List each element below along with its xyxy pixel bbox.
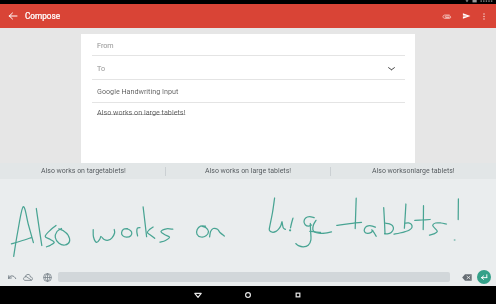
button[interactable]: Home: [242, 289, 254, 301]
button[interactable]: From: [81, 34, 415, 55]
staticText: Also works on large tablets!: [205, 167, 292, 175]
button[interactable]: Enter: [477, 270, 491, 284]
staticText: Also works on targetablets!: [41, 167, 126, 175]
staticText: Compose: [25, 11, 61, 21]
staticText: Also worksonlarge tablets!: [372, 167, 455, 175]
button[interactable]: Also worksonlarge tablets!: [331, 163, 496, 179]
button[interactable]: Send: [457, 4, 475, 28]
button[interactable]: Change language: [39, 269, 55, 285]
button[interactable]: Also works on large tablets!: [166, 163, 331, 179]
button[interactable]: To: [81, 56, 415, 79]
button[interactable]: Attach file: [436, 4, 457, 28]
button[interactable]: Back: [0, 4, 25, 28]
staticText: Google Handwriting Input: [97, 87, 179, 95]
button[interactable]: Also works on targetablets!: [0, 163, 166, 179]
button[interactable]: Backspace: [459, 269, 475, 285]
button[interactable]: Sync: [20, 269, 36, 285]
button[interactable]: Undo: [4, 269, 20, 285]
staticText: Also works on large tablets!: [97, 108, 186, 116]
staticText: To: [97, 64, 106, 72]
button[interactable]: Back: [192, 289, 204, 301]
button[interactable]: Google Handwriting Input: [81, 80, 415, 102]
staticText: From: [97, 41, 114, 49]
button[interactable]: Expand recipients: [386, 63, 396, 73]
button[interactable]: Recent apps: [292, 289, 304, 301]
button[interactable]: More options: [475, 4, 492, 28]
